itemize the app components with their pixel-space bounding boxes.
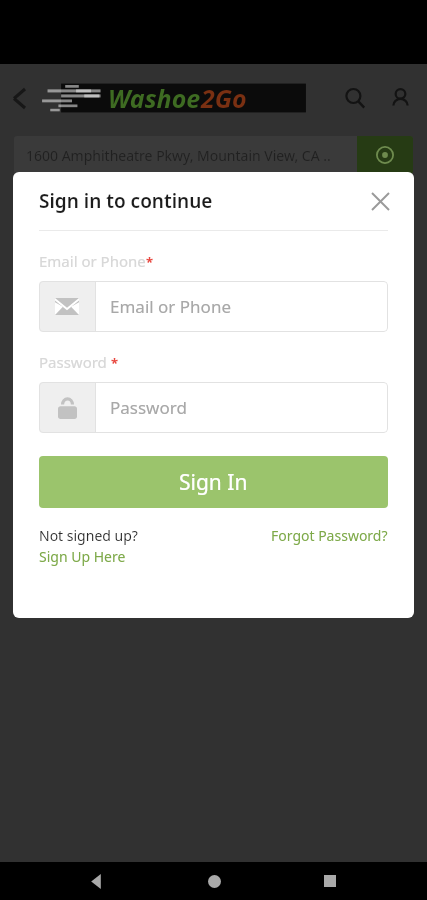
button[interactable]: Password (39, 382, 388, 433)
button[interactable]: Recent apps (311, 862, 349, 900)
button[interactable]: Back (78, 862, 116, 900)
staticText: Email or Phone (39, 251, 146, 271)
staticText: Washoe (108, 81, 201, 115)
button[interactable]: Close (360, 181, 400, 221)
staticText: Sign In (179, 468, 248, 497)
button[interactable]: Sign In (39, 456, 388, 508)
staticText: Email or Phone (110, 295, 231, 318)
staticText: Sign Up Here (39, 547, 126, 566)
staticText: * (146, 253, 154, 271)
staticText: 1600 Amphitheatre Pkwy, Mountain View, C… (26, 146, 331, 165)
staticText: Sign in to continue (39, 188, 213, 214)
button[interactable]: Email or Phone (39, 281, 388, 332)
staticText: * (111, 354, 119, 372)
staticText: 2Go (201, 81, 247, 115)
button[interactable]: Home (195, 862, 233, 900)
button[interactable]: Account (377, 75, 423, 121)
staticText: Password (39, 352, 111, 372)
button[interactable]: Search (333, 76, 377, 120)
staticText: Not signed up? (39, 526, 138, 545)
button[interactable]: 1600 Amphitheatre Pkwy, Mountain View, C… (14, 136, 413, 174)
button[interactable]: Forgot Password? (271, 526, 388, 545)
button[interactable]: Not signed up? (39, 526, 138, 566)
button[interactable]: Washoe2Go (38, 80, 310, 116)
staticText: Password (110, 396, 187, 419)
staticText: Forgot Password? (271, 526, 388, 545)
button[interactable]: Back (0, 72, 38, 124)
button[interactable]: Use current location (357, 136, 413, 174)
